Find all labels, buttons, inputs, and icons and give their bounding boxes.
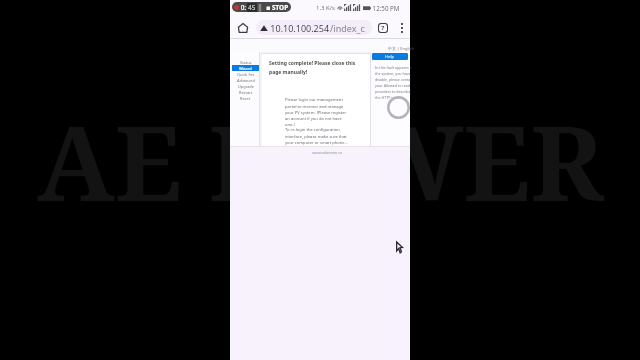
button[interactable]: Quick Set [232,71,259,77]
staticText: 0: [239,3,247,12]
staticText: Reset [240,96,251,101]
staticText: Wizard [239,66,252,71]
staticText: Status [240,60,252,65]
staticText: AE POWER [37,91,604,231]
staticText: /index_c [330,22,365,34]
staticText: Upgrade [238,84,254,89]
button[interactable]: Stop recording [234,2,289,12]
button[interactable]: Tabs [372,16,394,39]
staticText: | English [396,46,414,51]
staticText: Help [385,54,395,60]
button[interactable]: Upgrade [232,83,259,89]
button[interactable]: Help [372,53,408,60]
button[interactable]: Wizard [232,65,259,71]
staticText: Please login our management portal to mo… [285,97,351,127]
button[interactable]: Advanced [232,77,259,83]
staticText: Setting complete! Please close this page… [269,60,361,75]
button[interactable]: Restart [232,89,259,95]
staticText: 7 [381,24,385,32]
staticText: In this fault appears in the system, you… [375,65,411,100]
staticText: Restart [239,90,253,95]
button[interactable]: 10.10.100.254 [260,20,368,35]
staticText: ▪ STOP [266,3,289,12]
button[interactable]: More options [394,16,410,39]
button[interactable]: Reset [232,95,259,101]
staticText: 10.10.100.254 [268,22,330,34]
staticText: 45 [248,3,256,12]
staticText: Advanced [237,78,255,83]
staticText: To re-login the configuration interface,… [285,127,351,145]
staticText: ▌ [257,3,266,12]
staticText: www.solarman.cn [312,150,343,155]
staticText: 12:50 PM [371,4,400,12]
staticText: 1.3 K/s [316,4,335,12]
staticText: 中文 [388,46,396,51]
button[interactable]: Status [232,59,259,65]
staticText: Quick Set [237,72,255,77]
button[interactable]: Home [230,16,256,39]
